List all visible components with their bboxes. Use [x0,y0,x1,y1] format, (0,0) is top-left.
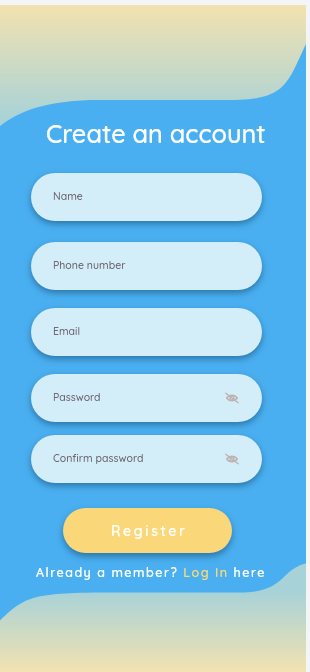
staticText: Create an account [46,118,266,150]
staticText: Register [111,522,188,540]
staticText: Email [53,324,81,337]
staticText: Name [53,189,83,202]
staticText: Already a member? Log In here [36,564,266,580]
button[interactable]: Already a member? Log In here [36,564,266,580]
button[interactable]: Toggle password visibility [219,385,245,411]
button[interactable]: Email [31,308,262,356]
staticText: Password [53,390,101,403]
button[interactable]: Register [63,508,232,553]
staticText: Confirm password [53,451,144,464]
button[interactable]: Phone number [31,242,262,290]
button[interactable]: Password [31,374,262,422]
button[interactable]: Toggle password visibility [219,446,245,472]
button[interactable]: Confirm password [31,435,262,483]
staticText: Phone number [53,258,126,271]
button[interactable]: Name [31,173,262,221]
